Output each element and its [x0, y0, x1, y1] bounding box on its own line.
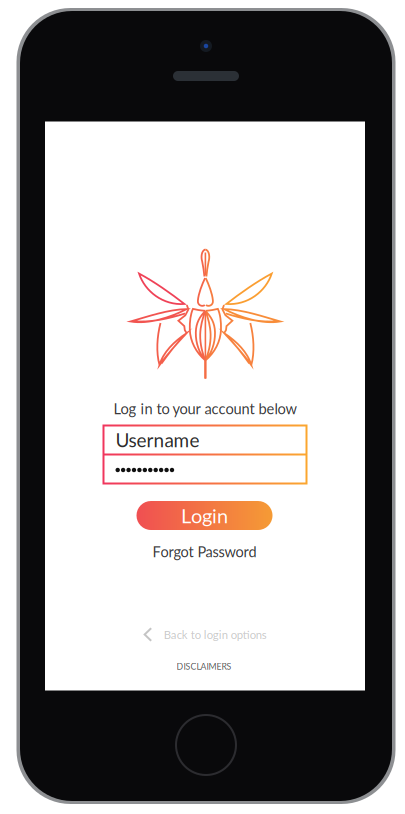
staticText: Back to login options — [164, 628, 267, 641]
button[interactable]: Login — [136, 501, 272, 530]
button[interactable]: Forgot Password — [144, 541, 264, 561]
staticText: Login — [181, 503, 228, 527]
staticText: Forgot Password — [152, 543, 256, 560]
staticText: Log in to your account below — [113, 400, 297, 417]
button[interactable]: Back to login options — [143, 625, 267, 643]
staticText: DISCLAIMERS — [176, 661, 231, 672]
staticText: Username — [115, 429, 199, 451]
button[interactable]: DISCLAIMERS — [159, 660, 249, 672]
